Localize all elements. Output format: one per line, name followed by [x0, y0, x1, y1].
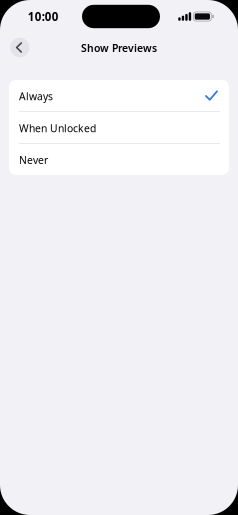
staticText: When Unlocked: [19, 121, 96, 135]
button[interactable]: Always: [9, 80, 229, 111]
staticText: Never: [19, 153, 48, 167]
staticText: Show Previews: [81, 41, 157, 55]
button[interactable]: When Unlocked: [9, 112, 229, 143]
button[interactable]: Back: [10, 38, 29, 57]
button[interactable]: Never: [9, 144, 229, 175]
staticText: Always: [19, 89, 53, 103]
staticText: 10:00: [28, 9, 59, 24]
